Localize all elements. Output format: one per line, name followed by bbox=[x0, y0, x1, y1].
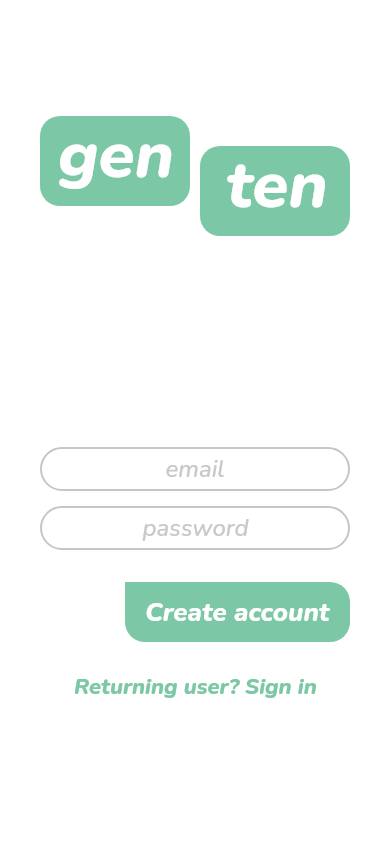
staticText: Create account bbox=[145, 595, 330, 630]
staticText: Returning user? Sign in bbox=[74, 672, 317, 702]
button[interactable]: password bbox=[40, 506, 350, 550]
button[interactable]: Returning user? Sign in bbox=[0, 670, 390, 704]
button[interactable]: Create account bbox=[125, 582, 350, 642]
staticText: gen bbox=[58, 110, 175, 200]
button[interactable]: email bbox=[40, 447, 350, 491]
staticText: password bbox=[142, 512, 249, 545]
staticText: ten bbox=[226, 140, 328, 230]
staticText: email bbox=[165, 453, 225, 486]
